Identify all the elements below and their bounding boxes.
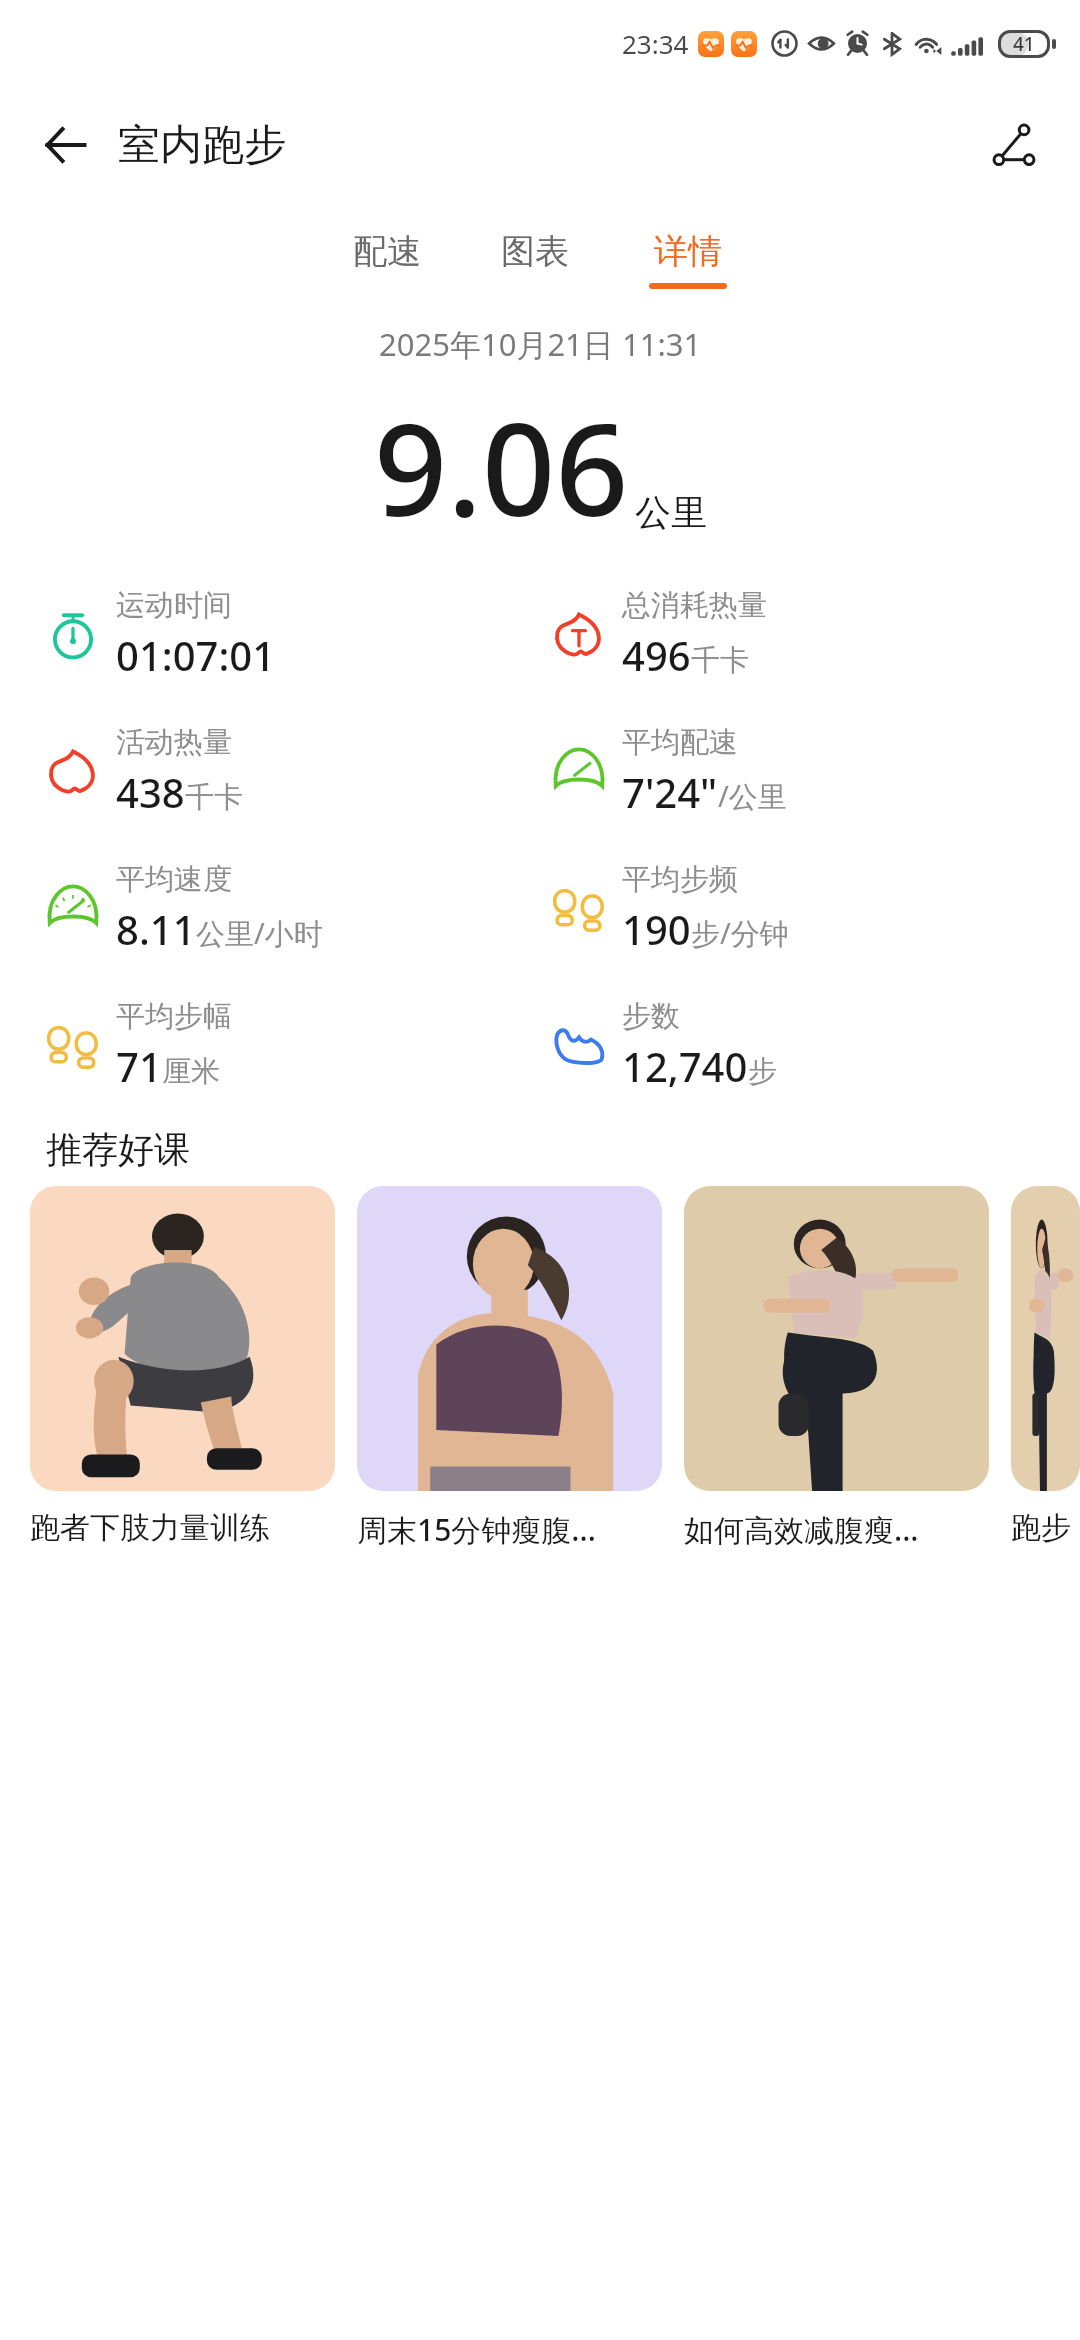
staticText: 71 <box>116 1039 162 1093</box>
staticText: 平均步幅 <box>116 998 232 1035</box>
button[interactable]: 平均配速 <box>552 724 787 819</box>
button[interactable]: 图表 <box>495 226 575 293</box>
staticText: 438 <box>116 765 185 819</box>
button[interactable]: 配速 <box>347 226 427 293</box>
button[interactable]: 周末15分钟瘦腹... <box>357 1186 662 1550</box>
staticText: 23:34 <box>622 26 689 61</box>
button[interactable]: 跑步 <box>1011 1186 1080 1547</box>
button[interactable]: 运动时间 <box>46 587 276 682</box>
staticText: 运动时间 <box>116 587 232 624</box>
staticText: 如何高效减腹瘦... <box>684 1509 919 1550</box>
staticText: 步 <box>748 1053 777 1090</box>
staticText: 活动热量 <box>116 724 232 761</box>
staticText: 千卡 <box>185 779 243 816</box>
staticText: 跑步 <box>1011 1509 1071 1547</box>
staticText: 41 <box>1013 31 1035 57</box>
button[interactable]: 平均步频 <box>552 861 789 956</box>
button[interactable]: 步数 <box>552 998 777 1093</box>
staticText: 平均步频 <box>622 861 738 898</box>
staticText: 推荐好课 <box>46 1127 190 1172</box>
staticText: 496 <box>622 628 691 682</box>
button[interactable]: 跑者下肢力量训练 <box>30 1186 335 1547</box>
staticText: 8.11 <box>116 902 196 956</box>
button[interactable]: 平均步幅 <box>46 998 232 1093</box>
staticText: 2025年10月21日 11:31 <box>379 323 702 365</box>
staticText: 平均速度 <box>116 861 232 898</box>
staticText: /公里 <box>718 776 787 816</box>
staticText: 图表 <box>501 230 569 273</box>
staticText: 详情 <box>654 230 722 273</box>
staticText: 周末15分钟瘦腹... <box>357 1509 596 1550</box>
button[interactable]: 平均速度 <box>46 861 323 956</box>
staticText: 190 <box>622 902 691 956</box>
button[interactable]: 活动热量 <box>46 724 243 819</box>
staticText: 公里 <box>635 490 707 535</box>
staticText: 千卡 <box>691 642 749 679</box>
button[interactable]: 如何高效减腹瘦... <box>684 1186 989 1550</box>
staticText: 平均配速 <box>622 724 738 761</box>
button[interactable]: Back <box>34 113 98 177</box>
button[interactable]: 详情 <box>643 226 733 293</box>
staticText: 公里/小时 <box>196 913 323 953</box>
staticText: 室内跑步 <box>118 119 286 172</box>
staticText: 厘米 <box>162 1053 220 1090</box>
staticText: 7'24" <box>622 765 718 819</box>
staticText: 跑者下肢力量训练 <box>30 1509 270 1547</box>
button[interactable]: 总消耗热量 <box>552 587 767 682</box>
staticText: 步数 <box>622 998 680 1035</box>
staticText: 配速 <box>353 230 421 273</box>
button[interactable]: Share <box>982 113 1046 177</box>
staticText: 步/分钟 <box>691 913 789 953</box>
staticText: 9.06 <box>374 379 629 553</box>
staticText: 总消耗热量 <box>622 587 767 624</box>
staticText: 12,740 <box>622 1039 748 1093</box>
staticText: 01:07:01 <box>116 628 276 682</box>
